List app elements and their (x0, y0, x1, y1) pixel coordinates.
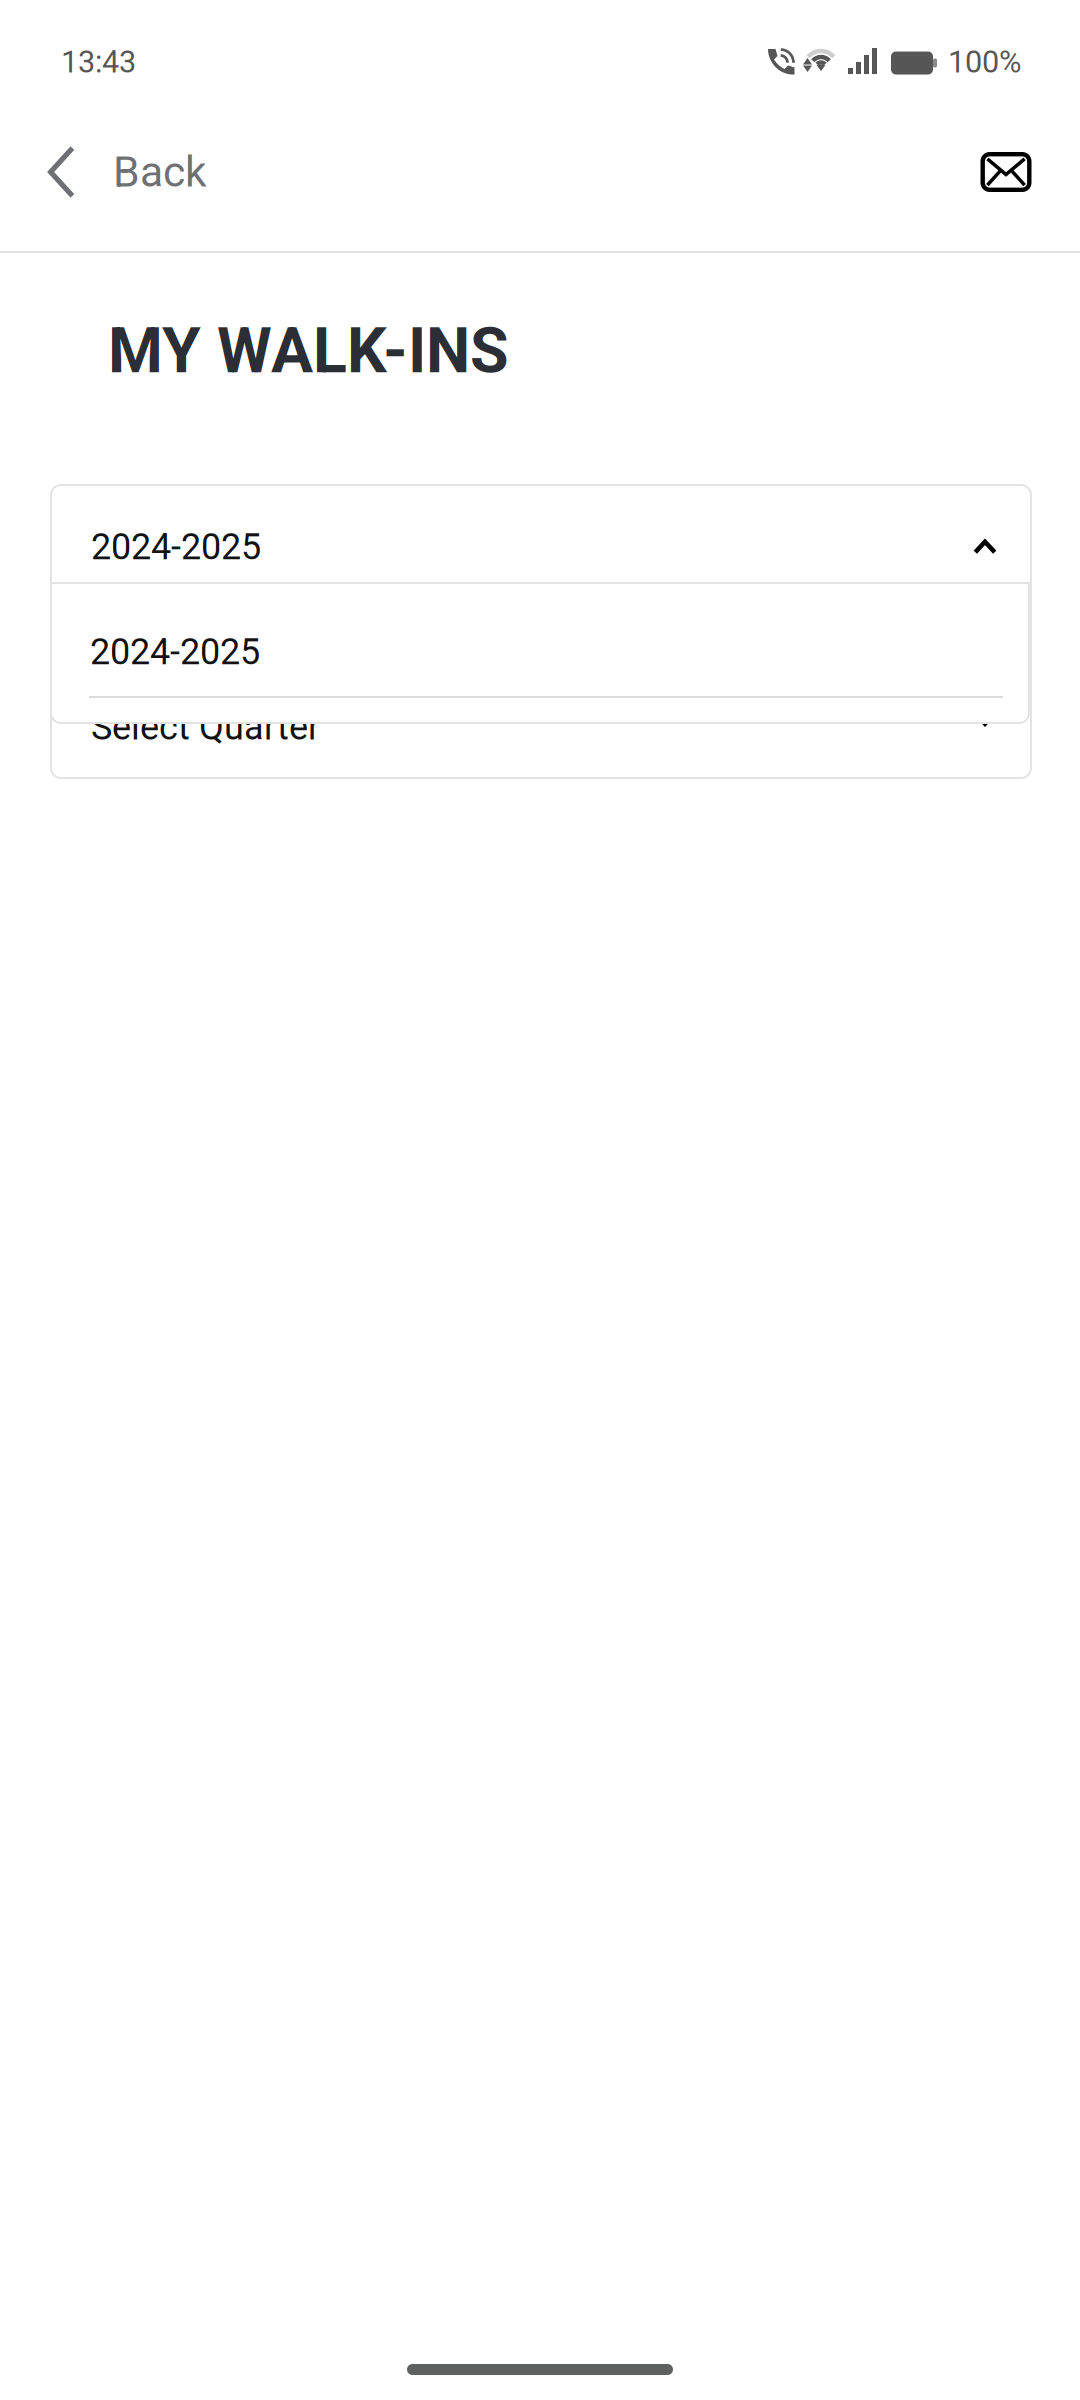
staticText: MY WALK-INS (108, 314, 509, 387)
button[interactable]: Back (0, 112, 290, 232)
button[interactable]: Select Quarter (51, 679, 1031, 777)
staticText: Back (113, 147, 207, 197)
button[interactable]: 2024-2025 (51, 498, 1031, 596)
button[interactable]: Messages (951, 112, 1061, 232)
staticText: 13:43 (61, 44, 136, 80)
staticText: 2024-2025 (91, 526, 261, 568)
button[interactable]: 2024-2025 (51, 595, 1029, 709)
staticText: Select Quarter (91, 706, 320, 748)
staticText: 2024-2025 (90, 631, 260, 673)
staticText: 100% (948, 44, 1021, 80)
